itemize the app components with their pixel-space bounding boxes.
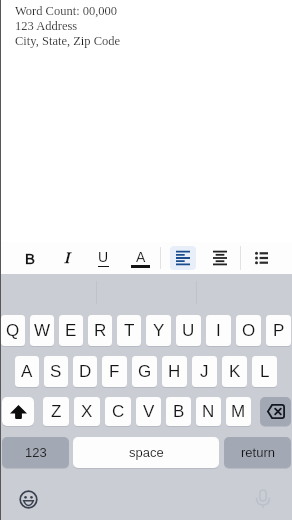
staticText: space xyxy=(129,445,164,460)
staticText: X xyxy=(81,402,93,421)
button[interactable]: K xyxy=(222,356,247,387)
staticText: return xyxy=(241,445,275,460)
button[interactable]: F xyxy=(102,356,127,387)
staticText: W xyxy=(34,321,51,340)
button[interactable]: G xyxy=(132,356,157,387)
button[interactable] xyxy=(207,242,233,274)
button[interactable]: P xyxy=(266,315,291,346)
button[interactable] xyxy=(248,242,274,274)
staticText: A xyxy=(21,362,33,381)
staticText: F xyxy=(109,362,120,381)
button[interactable]: N xyxy=(196,397,221,426)
button[interactable]: A xyxy=(126,242,154,274)
button[interactable]: return xyxy=(224,437,291,468)
staticText: K xyxy=(229,362,241,381)
staticText: U xyxy=(182,321,195,340)
button[interactable]: S xyxy=(44,356,68,387)
button[interactable]: J xyxy=(192,356,217,387)
staticText: I xyxy=(64,249,70,267)
staticText: M xyxy=(231,402,246,421)
button[interactable]: B xyxy=(16,242,44,274)
button[interactable]: M xyxy=(226,397,251,426)
staticText: P xyxy=(273,321,285,340)
staticText: B xyxy=(25,250,36,267)
button[interactable]: Z xyxy=(43,397,69,426)
button[interactable]: Backspace xyxy=(260,397,291,426)
staticText: 123 xyxy=(25,445,47,460)
staticText: A xyxy=(136,249,146,265)
button[interactable]: V xyxy=(136,397,161,426)
staticText: E xyxy=(65,321,77,340)
staticText: Y xyxy=(153,321,165,340)
button[interactable]: Y xyxy=(146,315,171,346)
staticText: B xyxy=(173,402,185,421)
button[interactable]: O xyxy=(236,315,261,346)
button[interactable]: R xyxy=(88,315,112,346)
button[interactable]: 123 xyxy=(2,437,69,468)
staticText: R xyxy=(94,321,107,340)
button[interactable]: T xyxy=(117,315,141,346)
button[interactable]: L xyxy=(252,356,277,387)
staticText: T xyxy=(124,321,135,340)
staticText: V xyxy=(143,402,155,421)
button[interactable]: U xyxy=(89,242,117,274)
staticText: D xyxy=(79,362,92,381)
staticText: N xyxy=(202,402,215,421)
button[interactable]: U xyxy=(176,315,201,346)
button[interactable]: Emoji keyboard xyxy=(0,482,56,516)
button[interactable]: D xyxy=(73,356,97,387)
staticText: U xyxy=(98,249,109,265)
staticText: H xyxy=(168,362,181,381)
button[interactable]: Q xyxy=(1,315,25,346)
button[interactable]: E xyxy=(59,315,83,346)
button[interactable]: I xyxy=(53,242,81,274)
staticText: J xyxy=(200,362,209,381)
staticText: C xyxy=(112,402,125,421)
button[interactable] xyxy=(170,242,196,274)
button[interactable]: C xyxy=(105,397,131,426)
staticText: L xyxy=(260,362,270,381)
button[interactable]: space xyxy=(73,437,219,468)
button[interactable]: Shift xyxy=(2,397,34,426)
button[interactable]: H xyxy=(162,356,187,387)
button[interactable]: A xyxy=(15,356,39,387)
staticText: I xyxy=(216,321,221,340)
button[interactable]: W xyxy=(30,315,54,346)
staticText: Q xyxy=(6,321,20,340)
button[interactable]: B xyxy=(166,397,191,426)
button[interactable]: X xyxy=(74,397,100,426)
staticText: G xyxy=(138,362,152,381)
staticText: Word Count: 00,000 123 Address City, Sta… xyxy=(15,4,121,48)
staticText: O xyxy=(242,321,256,340)
staticText: Z xyxy=(51,402,62,421)
button[interactable]: I xyxy=(206,315,231,346)
staticText: S xyxy=(50,362,62,381)
